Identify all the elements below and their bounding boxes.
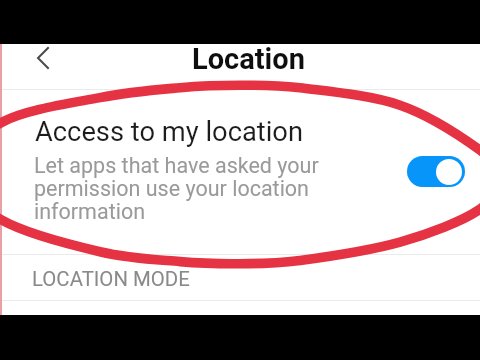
button[interactable]: Access to my location [0, 90, 480, 254]
staticText: Access to my location [35, 116, 303, 148]
staticText: LOCATION MODE [32, 267, 190, 291]
button[interactable]: LOCATION MODE [0, 255, 480, 300]
button[interactable]: Back [24, 44, 60, 76]
staticText: Location [192, 42, 305, 76]
staticText: Let apps that have asked your permission… [34, 153, 334, 224]
button[interactable]: Location toggle [407, 156, 465, 187]
